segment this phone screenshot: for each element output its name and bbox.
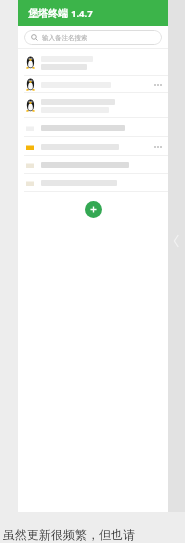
button[interactable] bbox=[18, 156, 168, 174]
button[interactable] bbox=[18, 76, 168, 93]
staticText: 堡塔终端 bbox=[28, 7, 68, 20]
staticText: 输入备注名搜索 bbox=[42, 34, 88, 42]
button[interactable]: 添加 bbox=[85, 201, 102, 218]
staticText: 虽然更新很频繁，但也请 bbox=[3, 527, 135, 542]
staticText: 1.4.7 bbox=[71, 7, 93, 20]
button[interactable] bbox=[18, 49, 168, 76]
button[interactable]: 输入备注名搜索 bbox=[24, 30, 162, 45]
button[interactable] bbox=[18, 118, 168, 137]
button[interactable] bbox=[18, 137, 168, 156]
button[interactable] bbox=[18, 93, 168, 118]
button[interactable] bbox=[18, 174, 168, 192]
